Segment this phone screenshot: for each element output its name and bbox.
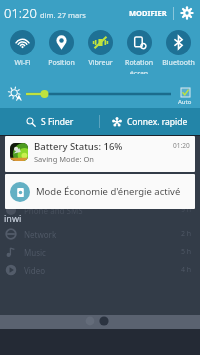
staticText: Connex. rapide bbox=[127, 116, 188, 128]
staticText: Phone and SMS bbox=[24, 205, 83, 216]
button[interactable]: Battery Status: 16% bbox=[5, 136, 195, 172]
button[interactable]: Rotation écran bbox=[119, 30, 159, 74]
staticText: Vibreur bbox=[88, 58, 113, 68]
staticText: Auto bbox=[178, 98, 192, 106]
staticText: Position bbox=[48, 58, 75, 68]
button[interactable]: MODIFIER bbox=[127, 4, 169, 22]
button[interactable]: Wi-Fi bbox=[2, 30, 42, 68]
button[interactable]: S Finder bbox=[0, 108, 99, 135]
staticText: 2 h bbox=[181, 229, 192, 239]
button[interactable]: Auto bbox=[176, 88, 194, 106]
staticText: Battery Status: 16% bbox=[34, 140, 123, 153]
button[interactable]: Connex. rapide bbox=[100, 108, 200, 135]
staticText: 4 h bbox=[181, 265, 192, 275]
staticText: Mode Économie d'énergie activé bbox=[36, 185, 181, 198]
staticText: Bluetooth bbox=[162, 58, 195, 68]
staticText: Music bbox=[24, 247, 46, 258]
button[interactable]: Position bbox=[41, 30, 81, 68]
staticText: 01:20 bbox=[173, 141, 190, 150]
staticText: Network bbox=[24, 229, 57, 240]
button[interactable]: Bluetooth bbox=[158, 30, 198, 68]
button[interactable]: Settings bbox=[179, 5, 195, 21]
staticText: MODIFIER bbox=[129, 8, 167, 18]
staticText: inwi bbox=[4, 212, 22, 224]
staticText: S Finder bbox=[41, 116, 74, 128]
staticText: 9 h bbox=[181, 205, 192, 215]
staticText: Video bbox=[24, 265, 46, 276]
staticText: dim. 27 mars bbox=[40, 10, 86, 20]
staticText: Saving Mode: On bbox=[34, 154, 94, 164]
staticText: 01:20 bbox=[4, 4, 37, 22]
staticText: 5 h bbox=[181, 247, 192, 257]
button[interactable]: Vibreur bbox=[80, 30, 120, 68]
staticText: Rotation écran bbox=[125, 58, 153, 74]
staticText: Wi-Fi bbox=[14, 58, 31, 68]
button[interactable]: Mode Économie d'énergie activé bbox=[5, 174, 195, 209]
